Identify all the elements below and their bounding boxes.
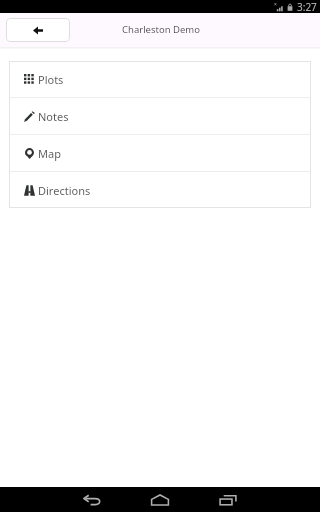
staticText: 3:27 xyxy=(297,0,317,13)
staticText: Map xyxy=(38,146,61,161)
staticText: Charleston Demo xyxy=(122,23,200,36)
button[interactable]: Notes xyxy=(9,98,311,134)
button[interactable]: Home xyxy=(142,487,178,512)
staticText: Directions xyxy=(38,183,91,198)
button[interactable]: Back xyxy=(6,18,70,42)
button[interactable]: Back xyxy=(74,487,110,512)
staticText: Notes xyxy=(38,109,69,124)
button[interactable]: Recents xyxy=(210,487,246,512)
staticText: Plots xyxy=(38,72,64,87)
button[interactable]: Plots xyxy=(9,61,311,97)
button[interactable]: Map xyxy=(9,135,311,171)
button[interactable]: Directions xyxy=(9,172,311,208)
